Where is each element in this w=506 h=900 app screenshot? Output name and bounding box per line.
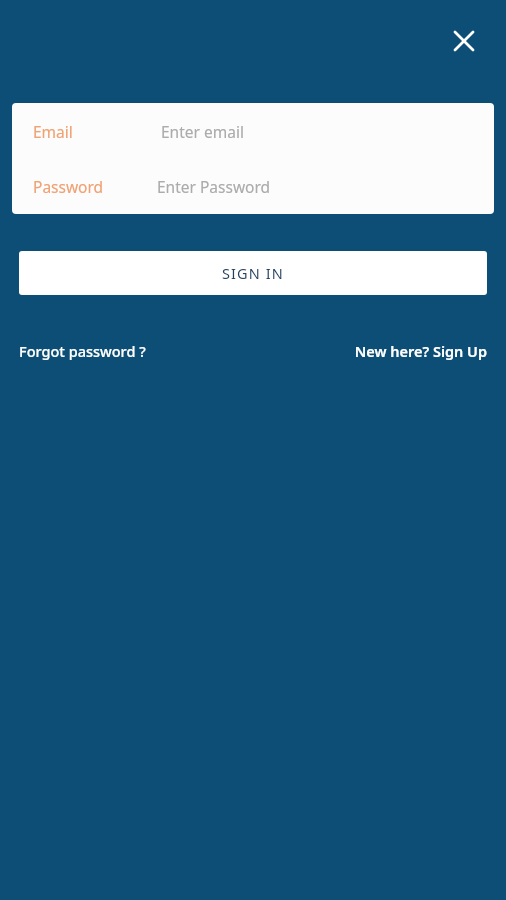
staticText: SIGN IN [222,263,284,283]
button[interactable]: New here? Sign Up [354,340,487,362]
staticText: Enter email [161,121,244,142]
button[interactable]: Forgot password ? [19,340,146,362]
staticText: Enter Password [157,176,271,197]
button[interactable]: Password [12,159,494,214]
staticText: Password [33,176,104,197]
button[interactable]: SIGN IN [19,251,487,295]
staticText: Forgot password ? [19,341,146,361]
button[interactable]: Email [12,103,494,159]
staticText: New here? Sign Up [354,341,487,361]
staticText: Email [33,121,73,142]
button[interactable]: Close [440,17,488,65]
